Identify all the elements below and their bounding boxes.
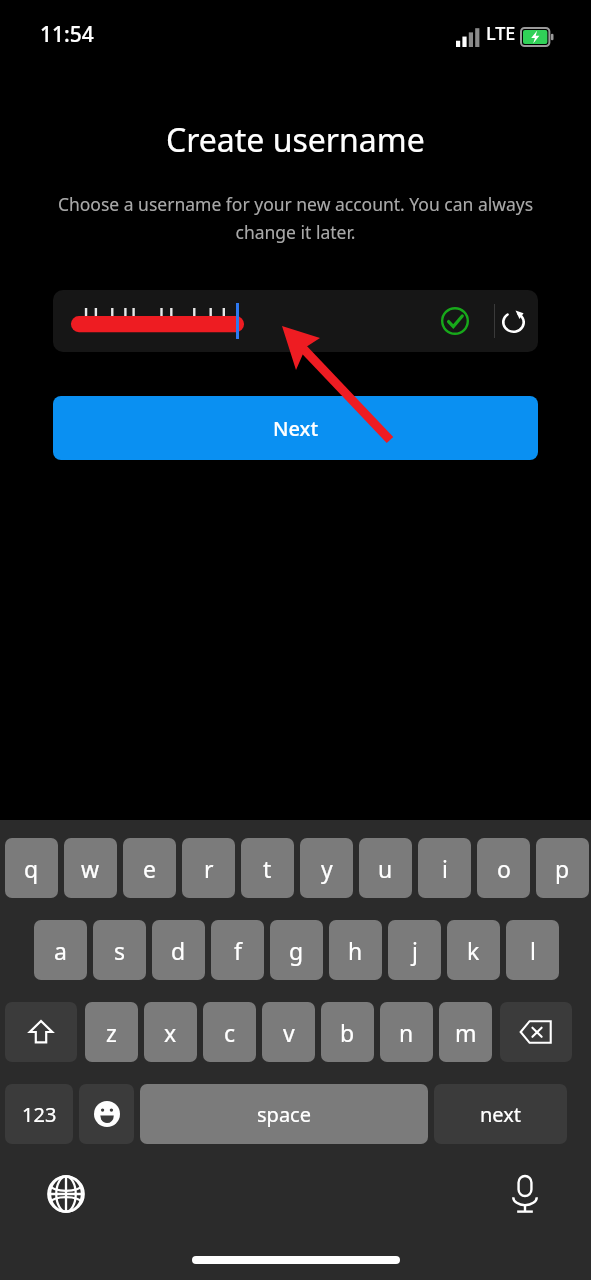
staticText: p bbox=[555, 853, 570, 884]
button[interactable]: Shift bbox=[5, 1002, 77, 1062]
button[interactable]: Next bbox=[53, 396, 538, 460]
button[interactable]: f bbox=[211, 920, 264, 980]
staticText: Choose a username for your new account. … bbox=[52, 192, 539, 244]
button[interactable]: s bbox=[93, 920, 146, 980]
button[interactable]: w bbox=[64, 838, 117, 898]
button[interactable]: next bbox=[434, 1084, 567, 1144]
staticText: 123 bbox=[22, 1101, 57, 1128]
button[interactable]: Username available bbox=[435, 301, 475, 341]
staticText: k bbox=[467, 935, 480, 966]
staticText: n bbox=[399, 1017, 414, 1048]
button[interactable]: Change keyboard language bbox=[40, 1168, 92, 1220]
staticText: j bbox=[412, 935, 418, 966]
staticText: b bbox=[340, 1017, 355, 1048]
staticText: q bbox=[24, 853, 39, 884]
button[interactable]: Voice input bbox=[499, 1168, 551, 1220]
button[interactable]: y bbox=[300, 838, 353, 898]
button[interactable]: Emoji bbox=[79, 1084, 134, 1144]
staticText: s bbox=[114, 935, 126, 966]
staticText: v bbox=[283, 1017, 295, 1048]
staticText: Create username bbox=[166, 118, 425, 162]
button[interactable]: d bbox=[152, 920, 205, 980]
staticText: z bbox=[106, 1017, 117, 1048]
button[interactable]: c bbox=[203, 1002, 256, 1062]
button[interactable]: h bbox=[329, 920, 382, 980]
staticText: x bbox=[164, 1017, 177, 1048]
staticText: w bbox=[81, 853, 100, 884]
staticText: 11:54 bbox=[40, 20, 94, 49]
button[interactable]: b bbox=[321, 1002, 374, 1062]
staticText: f bbox=[234, 935, 242, 966]
button[interactable]: a bbox=[34, 920, 87, 980]
button[interactable]: e bbox=[123, 838, 176, 898]
button[interactable]: r bbox=[182, 838, 235, 898]
button[interactable]: p bbox=[536, 838, 589, 898]
button[interactable]: Username available bbox=[53, 290, 538, 352]
staticText: i bbox=[442, 853, 448, 884]
staticText: e bbox=[143, 853, 156, 884]
button[interactable]: k bbox=[447, 920, 500, 980]
staticText: g bbox=[289, 935, 304, 966]
staticText: next bbox=[480, 1101, 522, 1128]
button[interactable]: u bbox=[359, 838, 412, 898]
button[interactable]: i bbox=[418, 838, 471, 898]
staticText: y bbox=[321, 853, 333, 884]
staticText: u bbox=[378, 853, 393, 884]
staticText: l bbox=[530, 935, 536, 966]
button[interactable]: o bbox=[477, 838, 530, 898]
staticText: d bbox=[171, 935, 186, 966]
button[interactable]: q bbox=[5, 838, 58, 898]
staticText: Next bbox=[273, 415, 319, 442]
staticText: LTE bbox=[486, 21, 516, 46]
button[interactable]: x bbox=[144, 1002, 197, 1062]
staticText: r bbox=[204, 853, 214, 884]
button[interactable]: t bbox=[241, 838, 294, 898]
staticText: m bbox=[455, 1017, 477, 1048]
button[interactable]: space bbox=[140, 1084, 428, 1144]
button[interactable]: Suggest another username bbox=[492, 300, 534, 342]
staticText: c bbox=[224, 1017, 236, 1048]
staticText: space bbox=[257, 1101, 311, 1128]
button[interactable]: 123 bbox=[5, 1084, 73, 1144]
button[interactable]: l bbox=[506, 920, 559, 980]
staticText: h bbox=[348, 935, 363, 966]
staticText: t bbox=[263, 853, 272, 884]
button[interactable]: n bbox=[380, 1002, 433, 1062]
button[interactable]: Backspace bbox=[500, 1002, 572, 1062]
staticText: a bbox=[54, 935, 67, 966]
button[interactable]: z bbox=[85, 1002, 138, 1062]
button[interactable]: v bbox=[262, 1002, 315, 1062]
button[interactable]: m bbox=[439, 1002, 492, 1062]
staticText: o bbox=[497, 853, 511, 884]
button[interactable]: g bbox=[270, 920, 323, 980]
button[interactable]: j bbox=[388, 920, 441, 980]
